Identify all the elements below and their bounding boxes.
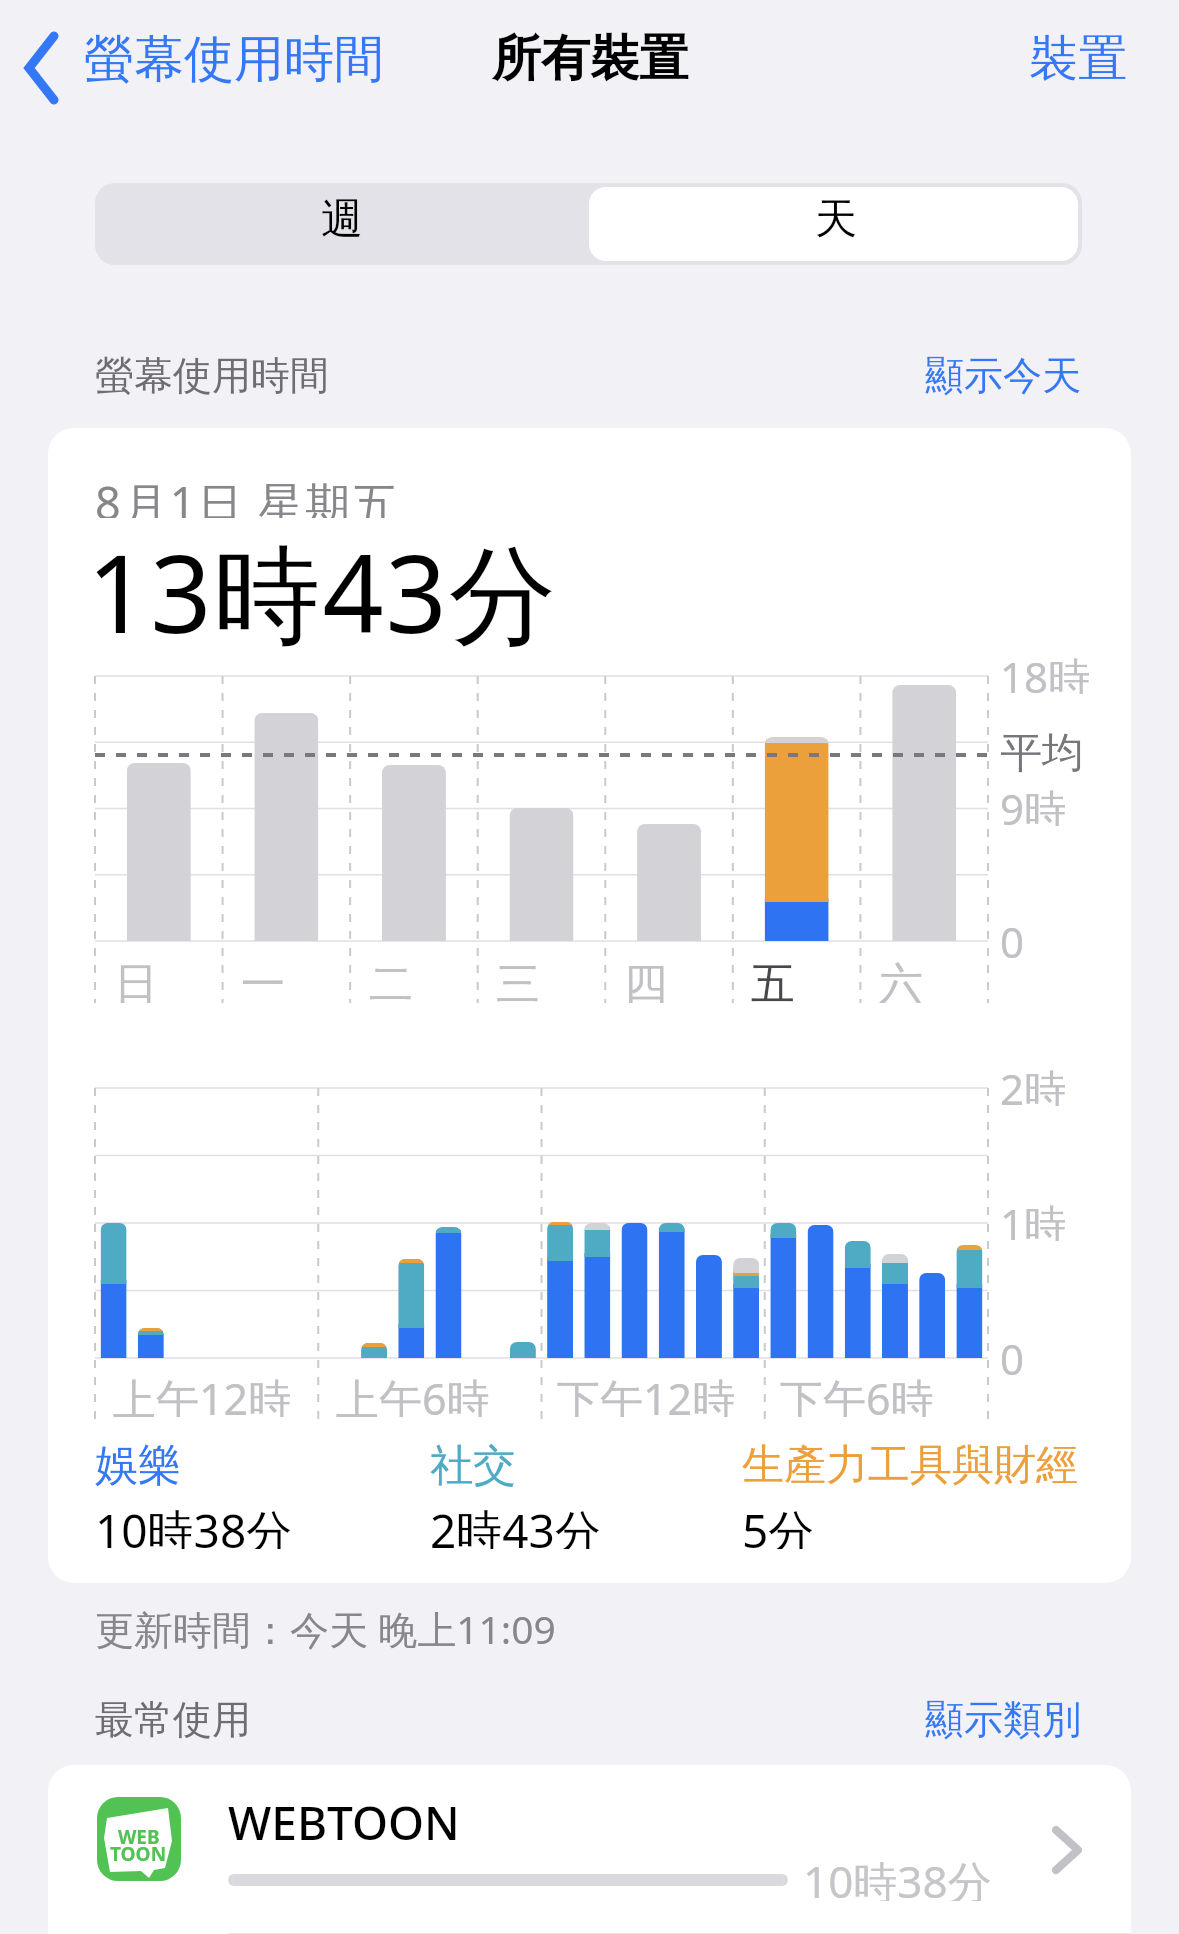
staticText: 5分 [742, 1499, 815, 1549]
staticText: 上午12時 [113, 1369, 292, 1417]
staticText: 四 [624, 957, 668, 1003]
staticText: 13時43分 [87, 519, 558, 665]
staticText: 10時38分 [803, 1851, 992, 1901]
staticText: WEBTOON [228, 1791, 460, 1843]
staticText: 天 [815, 193, 857, 246]
staticText: 10時38分 [95, 1499, 293, 1549]
staticText: 社交 [430, 1439, 516, 1487]
staticText: 顯示今天 [925, 351, 1081, 397]
staticText: 娛樂 [95, 1439, 181, 1487]
staticText: 最常使用 [95, 1695, 251, 1741]
button[interactable]: 週 [95, 183, 589, 265]
staticText: 二 [369, 957, 413, 1003]
staticText: 週 [321, 193, 363, 246]
staticText: 五 [751, 957, 795, 1003]
button[interactable]: 顯示今天 [781, 355, 1081, 401]
staticText: 更新時間：今天 晚上11:09 [95, 1602, 556, 1650]
staticText: 0 [1000, 1330, 1025, 1376]
staticText: 0 [1000, 913, 1025, 959]
staticText: 一 [241, 957, 285, 1003]
staticText: 8月1日 星期五 [95, 472, 400, 518]
staticText: 所有裝置 [492, 28, 688, 90]
staticText: 9時 [1000, 780, 1067, 826]
staticText: 1時 [1000, 1195, 1067, 1241]
staticText: 六 [879, 957, 923, 1003]
staticText: 螢幕使用時間 [84, 28, 384, 91]
staticText: 日 [114, 957, 158, 1003]
staticText: TOON [110, 1841, 167, 1861]
staticText: 2時 [1000, 1060, 1067, 1106]
staticText: 三 [496, 957, 540, 1003]
button[interactable]: WEB [48, 1765, 1131, 1934]
staticText: 裝置 [1029, 28, 1127, 90]
button[interactable]: 裝置 [947, 25, 1127, 105]
staticText: 螢幕使用時間 [95, 351, 329, 397]
button[interactable]: 天 [589, 183, 1082, 265]
staticText: 顯示類別 [925, 1695, 1081, 1741]
staticText: WEB [118, 1824, 160, 1844]
staticText: 18時 [1000, 648, 1091, 694]
button[interactable]: 顯示類別 [781, 1699, 1081, 1745]
staticText: 下午12時 [557, 1369, 736, 1417]
staticText: 下午6時 [780, 1369, 934, 1417]
staticText: 平均 [1000, 727, 1084, 773]
staticText: 2時43分 [430, 1499, 601, 1549]
staticText: 上午6時 [336, 1369, 490, 1417]
button[interactable]: 螢幕使用時間 [20, 25, 440, 105]
staticText: 生產力工具與財經 [742, 1439, 1078, 1487]
